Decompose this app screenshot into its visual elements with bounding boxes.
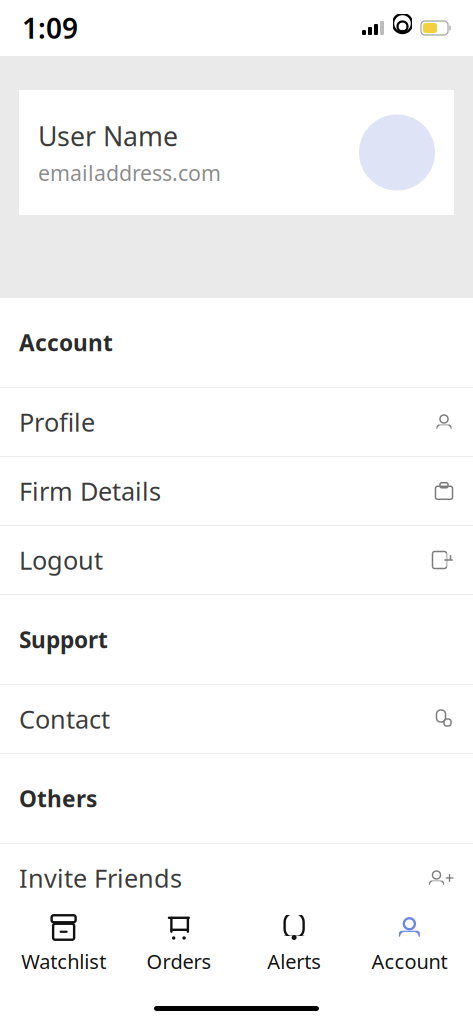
button[interactable]: Rate Us (0, 913, 473, 981)
staticText: Invite Friends (19, 861, 182, 895)
staticText: Firm Details (19, 474, 161, 508)
staticText: Watchlist (21, 948, 106, 975)
staticText: Account (371, 948, 447, 975)
button[interactable]: Watchlist (6, 900, 121, 985)
staticText: Support (19, 624, 108, 654)
button[interactable]: Contact (0, 685, 473, 753)
staticText: Alerts (267, 948, 321, 975)
button[interactable]: Account (352, 900, 467, 985)
button[interactable]: Logout (0, 526, 473, 594)
staticText: emailaddress.com (38, 158, 221, 187)
staticText: Orders (146, 948, 211, 975)
staticText: Profile (19, 405, 95, 439)
staticText: Others (19, 783, 97, 813)
staticText: Name Surname (19, 177, 224, 214)
button[interactable]: Invite Friends (0, 844, 473, 912)
button[interactable]: Alerts (236, 900, 352, 985)
staticText: Contact (19, 702, 110, 736)
staticText: Rate Us (19, 930, 110, 964)
button[interactable]: Orders (121, 900, 236, 985)
staticText: 1:09 (22, 9, 78, 47)
staticText: Logout (19, 543, 103, 577)
staticText: User Name (38, 118, 178, 153)
button[interactable]: Profile (0, 388, 473, 456)
button[interactable]: Firm Details (0, 457, 473, 525)
staticText: Account (19, 327, 113, 357)
staticText: Account (19, 96, 195, 153)
